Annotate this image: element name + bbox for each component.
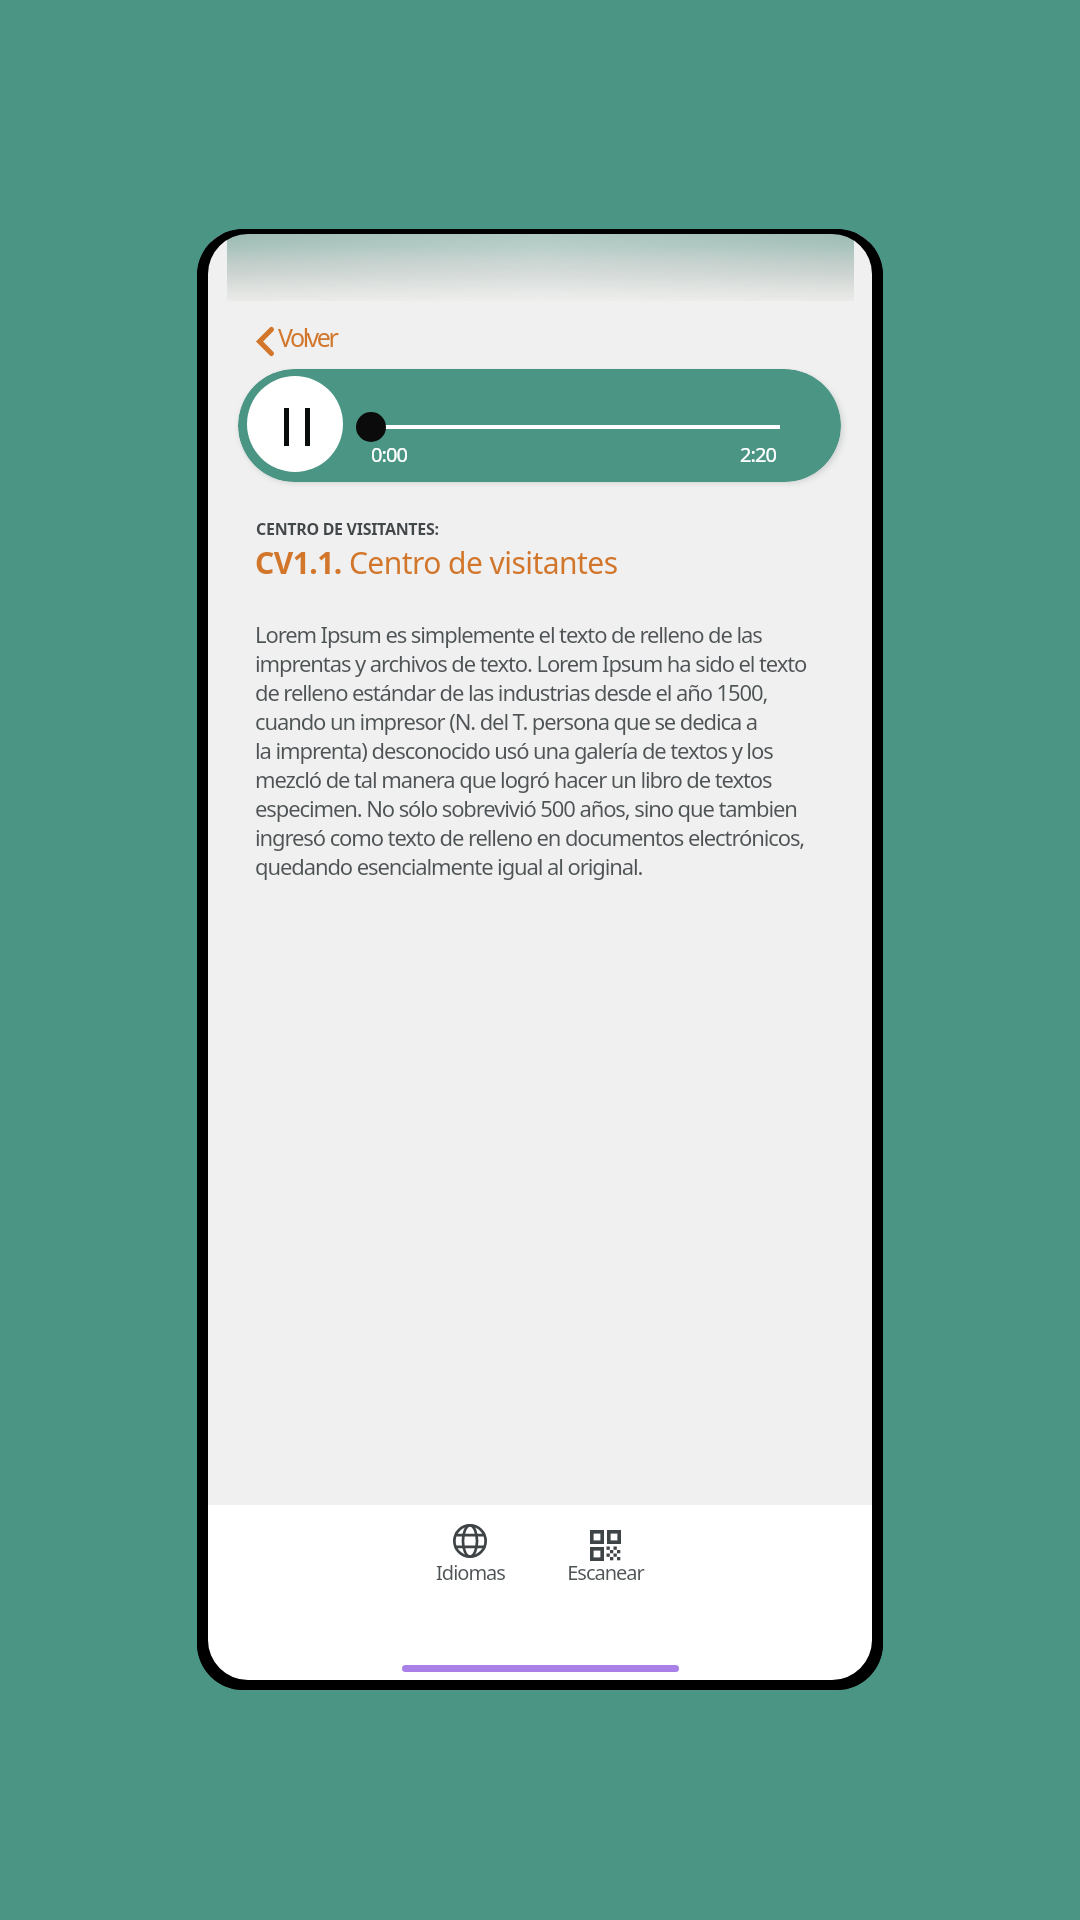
button[interactable]: Pausa (247, 376, 343, 472)
staticText: CV1.1. Centro de visitantes (255, 542, 618, 583)
staticText: Idiomas (436, 1559, 505, 1586)
button[interactable]: Progreso (356, 412, 386, 442)
button[interactable]: Volver (257, 316, 337, 358)
staticText: 0:00 (371, 441, 408, 468)
staticText: Lorem Ipsum es simplemente el texto de r… (255, 619, 807, 881)
button[interactable]: Escanear (545, 1505, 665, 1625)
staticText: 2:20 (740, 441, 777, 468)
button[interactable]: Idiomas (410, 1505, 530, 1625)
staticText: Volver (278, 320, 337, 354)
staticText: CENTRO DE VISITANTES: (256, 518, 439, 540)
staticText: Escanear (567, 1559, 644, 1586)
